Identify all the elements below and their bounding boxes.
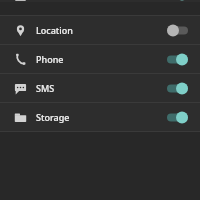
staticText: SMS bbox=[36, 82, 162, 94]
button[interactable]: Phone permission on bbox=[162, 45, 192, 73]
staticText: Phone bbox=[36, 53, 162, 65]
staticText: Location bbox=[36, 24, 162, 36]
button[interactable]: Contacts bbox=[0, 0, 200, 2]
button[interactable]: Location permission off bbox=[162, 16, 192, 44]
button[interactable]: SMS permission on bbox=[162, 74, 192, 102]
staticText: Storage bbox=[36, 111, 162, 123]
button[interactable]: SMS bbox=[0, 74, 200, 102]
button[interactable]: Contacts permission on bbox=[162, 0, 192, 2]
button[interactable]: Location bbox=[0, 16, 200, 44]
button[interactable]: Storage bbox=[0, 103, 200, 131]
button[interactable]: Phone bbox=[0, 45, 200, 73]
button[interactable]: Storage permission on bbox=[162, 103, 192, 131]
